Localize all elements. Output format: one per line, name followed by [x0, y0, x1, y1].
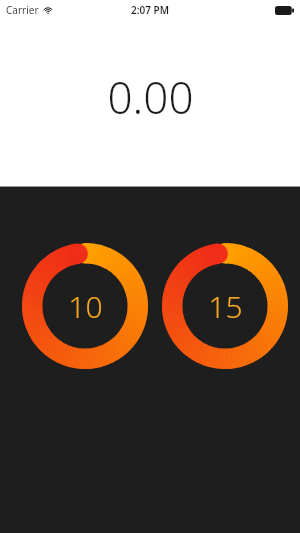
staticText: 0.00: [107, 67, 194, 127]
staticText: Carrier: [6, 3, 39, 17]
button[interactable]: 0.00: [107, 67, 194, 127]
button[interactable]: Timer 15: [162, 243, 288, 369]
staticText: 10: [68, 286, 103, 327]
staticText: 2:07 PM: [131, 3, 169, 17]
staticText: 15: [208, 286, 243, 327]
button[interactable]: Timer 10: [22, 243, 148, 369]
